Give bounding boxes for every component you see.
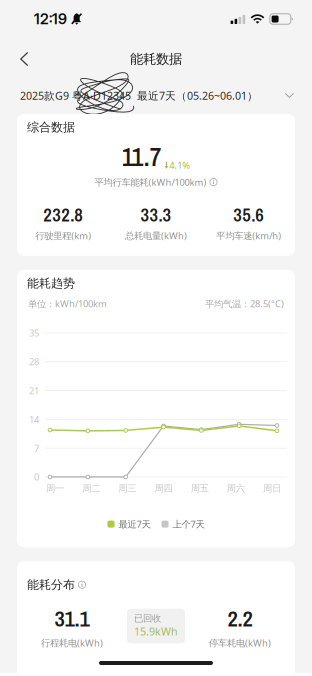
staticText: 能耗数据 [130, 51, 182, 67]
staticText: 0 [34, 471, 39, 483]
staticText: 15.9kWh [134, 624, 178, 638]
staticText: 11.7 [122, 140, 162, 174]
staticText: 35.6 [233, 202, 264, 227]
staticText: 232.8 [43, 202, 83, 227]
staticText: 周四 [154, 483, 172, 494]
staticText: 最近7天 [118, 518, 150, 530]
staticText: 停车耗电(kWh) [209, 637, 271, 649]
staticText: 周五 [191, 483, 209, 494]
staticText: 14 [29, 413, 39, 425]
button[interactable]: 返回 [8, 43, 40, 75]
staticText: 能耗趋势 [27, 276, 75, 290]
staticText: 已回收 [134, 613, 161, 624]
staticText: 4.1% [169, 159, 190, 171]
staticText: 周一 [46, 483, 64, 494]
staticText: 2.2 [227, 603, 252, 634]
staticText: 平均车速(km/h) [216, 229, 281, 242]
staticText: 2025款G9 粤A·D12345 最近7天（05.26~06.01） [20, 88, 258, 103]
staticText: 21 [29, 384, 39, 397]
staticText: 能耗分布 [27, 577, 75, 592]
staticText: 周日 [263, 483, 281, 494]
staticText: 行程耗电(kWh) [41, 637, 103, 649]
staticText: 12:19 [34, 10, 67, 28]
staticText: 7 [34, 442, 39, 454]
staticText: 上个7天 [172, 518, 204, 530]
staticText: 平均行车能耗(kWh/100km) [94, 176, 206, 188]
staticText: 周二 [82, 483, 100, 494]
staticText: 平均气温：28.5(°C) [205, 297, 284, 310]
staticText: 周六 [227, 483, 245, 494]
staticText: 单位：kWh/100km [28, 297, 107, 310]
staticText: 28 [29, 355, 39, 368]
staticText: 33.3 [140, 202, 171, 227]
staticText: 行驶里程(km) [35, 229, 91, 242]
staticText: 31.1 [54, 603, 89, 634]
button[interactable]: 2025款G9 粤A·D12345 最近7天（05.26~06.01） [0, 77, 312, 114]
staticText: 综合数据 [27, 120, 75, 135]
staticText: 35 [29, 327, 39, 339]
staticText: 周三 [118, 483, 136, 494]
staticText: 总耗电量(kWh) [125, 229, 187, 242]
